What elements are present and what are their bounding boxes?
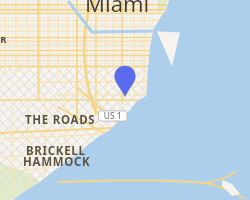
button[interactable] <box>0 0 250 200</box>
